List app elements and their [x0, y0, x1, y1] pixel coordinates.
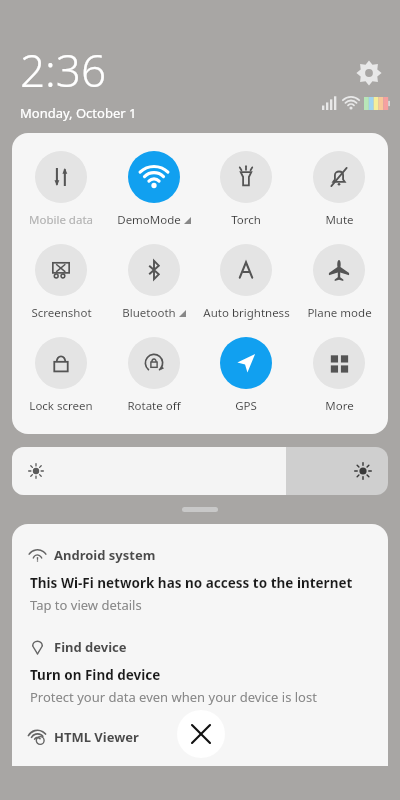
button[interactable]: Find device — [30, 638, 370, 706]
button[interactable]: DemoMode — [110, 151, 198, 228]
staticText: Lock screen — [29, 398, 93, 414]
button[interactable]: Screenshot — [17, 244, 105, 321]
staticText: Protect your data even when your device … — [30, 688, 317, 706]
staticText: Turn on Find device — [30, 666, 161, 684]
button[interactable]: GPS — [202, 337, 290, 414]
button[interactable]: Close — [177, 710, 225, 758]
staticText: Bluetooth — [122, 305, 176, 321]
button[interactable]: Bluetooth — [110, 244, 198, 321]
staticText: 2:36 — [20, 40, 107, 100]
button[interactable]: Torch — [202, 151, 290, 228]
staticText: Tap to view details — [30, 596, 142, 614]
staticText: Auto brightness — [203, 305, 290, 321]
staticText: Torch — [231, 212, 261, 228]
button[interactable]: Plane mode — [295, 244, 383, 321]
staticText: More — [325, 398, 354, 414]
button[interactable]: Android system — [30, 546, 370, 614]
staticText: DemoMode — [117, 212, 181, 228]
button[interactable]: Lock screen — [17, 337, 105, 414]
staticText: Mute — [325, 212, 354, 228]
staticText: Rotate off — [127, 398, 181, 414]
staticText: This Wi-Fi network has no access to the … — [30, 574, 353, 592]
button[interactable]: Mobile data — [17, 151, 105, 228]
button[interactable]: Mute — [295, 151, 383, 228]
button[interactable]: Settings — [354, 58, 384, 88]
staticText: Plane mode — [307, 305, 372, 321]
button[interactable]: Auto brightness — [202, 244, 290, 321]
staticText: Android system — [54, 546, 156, 564]
button[interactable]: Brightness — [12, 447, 388, 495]
staticText: GPS — [235, 398, 257, 414]
staticText: Mobile data — [29, 212, 93, 228]
staticText: Monday, October 1 — [20, 104, 137, 122]
staticText: Screenshot — [31, 305, 92, 321]
staticText: Find device — [54, 638, 127, 656]
button[interactable]: More — [295, 337, 383, 414]
staticText: HTML Viewer — [54, 728, 139, 746]
button[interactable]: Rotate off — [110, 337, 198, 414]
